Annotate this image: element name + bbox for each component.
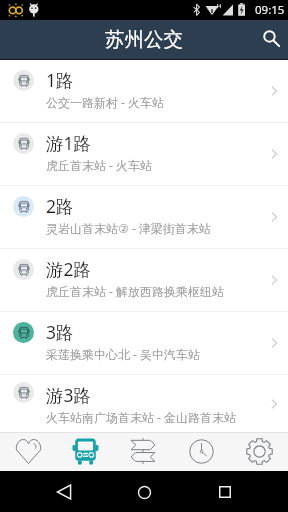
staticText: 3路 <box>46 320 74 344</box>
button[interactable]: 1路 <box>0 60 288 122</box>
button[interactable]: 3路 <box>0 312 288 374</box>
staticText: 09:15 <box>255 2 285 18</box>
button[interactable]: Search <box>250 20 288 59</box>
button[interactable]: 游3路 <box>0 375 288 432</box>
button[interactable]: 游2路 <box>0 249 288 311</box>
staticText: 虎丘首末站 - 火车站 <box>46 157 153 173</box>
staticText: 虎丘首末站 - 解放西路换乘枢纽站 <box>46 283 225 299</box>
staticText: 灵岩山首末站② - 津梁街首末站 <box>46 220 211 236</box>
staticText: 1路 <box>46 68 74 92</box>
button[interactable]: Bus lines <box>57 433 114 471</box>
staticText: 采莲换乘中心北 - 吴中汽车站 <box>46 346 201 362</box>
staticText: 游1路 <box>46 131 92 155</box>
button[interactable]: 游1路 <box>0 123 288 185</box>
staticText: 公交一路新村 - 火车站 <box>46 94 165 110</box>
staticText: 2路 <box>46 194 74 218</box>
button[interactable]: Transfer <box>114 433 172 471</box>
button[interactable]: 2路 <box>0 186 288 248</box>
button[interactable]: Back <box>47 475 81 509</box>
button[interactable]: Favorites <box>0 433 57 471</box>
staticText: 火车站南广场首末站 - 金山路首末站 <box>46 409 237 425</box>
staticText: 游2路 <box>46 257 92 281</box>
button[interactable]: Settings <box>230 433 288 471</box>
staticText: 苏州公交 <box>105 27 183 52</box>
button[interactable]: Home <box>127 475 161 509</box>
staticText: 游3路 <box>46 383 92 407</box>
button[interactable]: Recents <box>208 475 242 509</box>
button[interactable]: Timetable <box>172 433 230 471</box>
